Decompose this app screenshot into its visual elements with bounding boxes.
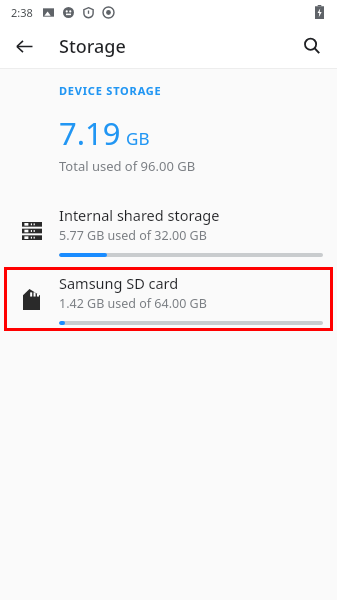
staticText: Internal shared storage [59, 205, 220, 225]
staticText: 1.42 GB used of 64.00 GB [59, 295, 207, 312]
staticText: 5.77 GB used of 32.00 GB [59, 227, 207, 244]
staticText: GB [126, 127, 150, 150]
button[interactable]: Internal shared storage [4, 199, 333, 263]
staticText: Samsung SD card [59, 273, 179, 293]
button[interactable]: Back [8, 30, 40, 62]
staticText: Storage [59, 34, 126, 59]
staticText: Total used of 96.00 GB [59, 157, 196, 175]
staticText: 7.19 [59, 112, 121, 154]
button[interactable]: Search [295, 29, 329, 63]
staticText: 2:38 [11, 5, 33, 20]
button[interactable]: Samsung SD card [4, 267, 333, 331]
staticText: DEVICE STORAGE [59, 83, 162, 98]
